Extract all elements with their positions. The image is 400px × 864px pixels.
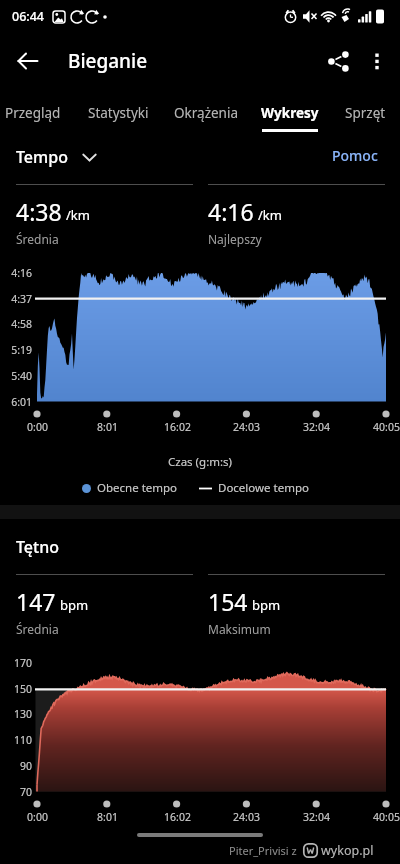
staticText: Pomoc [332, 146, 378, 165]
staticText: Tętno [16, 536, 59, 558]
staticText: 32:04 [303, 420, 330, 434]
staticText: 32:04 [303, 810, 330, 824]
staticText: 147 [16, 586, 56, 617]
staticText: 24:03 [233, 810, 260, 824]
staticText: 170 [13, 656, 32, 670]
staticText: 4:37 [11, 292, 32, 306]
staticText: 40:05 [373, 420, 400, 434]
staticText: wykop.pl [321, 842, 374, 859]
staticText: 154 [208, 586, 248, 617]
button[interactable]: Share [316, 39, 360, 83]
staticText: 40:05 [373, 810, 400, 824]
staticText: bpm [252, 596, 281, 614]
staticText: 06:44 [12, 8, 45, 25]
staticText: 6:01 [11, 395, 32, 409]
button[interactable]: More options [355, 39, 399, 83]
staticText: 110 [13, 733, 32, 747]
staticText: Średnia [16, 621, 59, 637]
staticText: 0:00 [27, 810, 48, 824]
staticText: 4:16 [11, 266, 32, 280]
button[interactable]: Pomoc [324, 141, 386, 169]
staticText: 0:00 [27, 420, 48, 434]
staticText: Obecne tempo [97, 480, 178, 496]
staticText: Docelowe tempo [218, 480, 309, 496]
staticText: Przegląd [5, 104, 61, 122]
staticText: /km [258, 206, 282, 224]
staticText: 150 [13, 682, 32, 696]
staticText: Maksimum [208, 621, 271, 637]
staticText: Okrążenia [174, 104, 238, 122]
staticText: Piter_Privisi z [229, 843, 297, 858]
staticText: Najlepszy [208, 231, 262, 247]
staticText: Średnia [16, 231, 59, 247]
staticText: Bieganie [68, 48, 148, 74]
button[interactable]: Przegląd [0, 92, 77, 132]
staticText: /km [66, 206, 90, 224]
staticText: 5:40 [11, 369, 32, 383]
staticText: 24:03 [233, 420, 260, 434]
button[interactable]: Sprzęt [321, 92, 400, 132]
button[interactable]: Back [6, 39, 50, 83]
staticText: 4:58 [11, 317, 32, 331]
button[interactable]: Wykresy [246, 92, 334, 132]
staticText: 70 [19, 785, 32, 799]
staticText: 16:02 [164, 420, 191, 434]
staticText: bpm [60, 596, 89, 614]
staticText: Tempo [16, 146, 68, 168]
staticText: 8:01 [97, 810, 118, 824]
staticText: Sprzęt [345, 104, 386, 122]
staticText: 130 [13, 707, 32, 721]
staticText: 4:16 [208, 196, 254, 227]
staticText: Czas (g:m:s) [168, 454, 233, 470]
staticText: 4:38 [16, 196, 62, 227]
staticText: 16:02 [164, 810, 191, 824]
staticText: 8:01 [97, 420, 118, 434]
button[interactable]: Statystyki [74, 92, 162, 132]
staticText: 90 [19, 759, 32, 773]
staticText: Statystyki [88, 104, 149, 122]
button[interactable]: Okrążenia [162, 92, 250, 132]
staticText: Wykresy [261, 104, 319, 122]
staticText: 5:19 [11, 343, 32, 357]
